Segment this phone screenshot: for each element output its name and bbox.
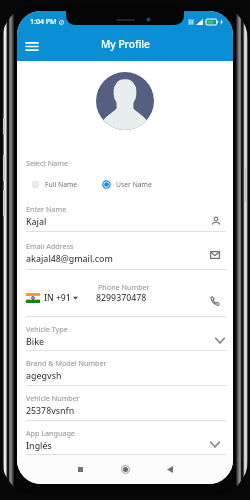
other: Expand bbox=[215, 337, 225, 344]
staticText: akajal48@gmail.com bbox=[26, 253, 113, 265]
staticText: App Language bbox=[26, 428, 75, 438]
staticText: agegvsh bbox=[26, 370, 62, 382]
button[interactable]: Home bbox=[118, 462, 133, 477]
staticText: Kajal bbox=[26, 216, 47, 228]
staticText: Vehicle Number bbox=[26, 393, 80, 403]
staticText: IN +91 bbox=[44, 292, 71, 304]
staticText: Enter Name bbox=[26, 204, 67, 214]
staticText: Inglés bbox=[26, 440, 52, 452]
button[interactable]: Enter Name bbox=[26, 200, 226, 232]
button[interactable]: Brand & Model Number bbox=[26, 351, 226, 386]
button[interactable]: Open navigation menu bbox=[23, 37, 41, 55]
button[interactable]: Recent apps bbox=[73, 462, 88, 477]
button[interactable]: App Language bbox=[26, 421, 226, 455]
staticText: Phone Number bbox=[98, 282, 150, 292]
staticText: Select Name bbox=[26, 158, 69, 168]
staticText: Full Name bbox=[45, 180, 78, 189]
button[interactable]: User Name bbox=[102, 180, 152, 189]
staticText: 25378vsnfn bbox=[26, 405, 75, 417]
staticText: User Name bbox=[116, 180, 152, 189]
other: Expand bbox=[210, 441, 220, 448]
staticText: 1:04 PM bbox=[30, 17, 57, 27]
button[interactable]: Back bbox=[162, 462, 177, 477]
button[interactable]: Full Name bbox=[31, 180, 78, 189]
staticText: 8299370478 bbox=[96, 292, 147, 304]
other: Name bbox=[211, 216, 221, 226]
other: Call bbox=[210, 296, 220, 306]
button[interactable]: Phone Number bbox=[26, 270, 226, 317]
button[interactable]: Vehicle Number bbox=[26, 386, 226, 421]
staticText: Bike bbox=[26, 336, 45, 348]
staticText: Brand & Model Number bbox=[26, 358, 107, 368]
button[interactable]: Vehicle Type bbox=[26, 317, 226, 351]
staticText: Email Address bbox=[26, 241, 74, 251]
other: Email bbox=[210, 251, 220, 259]
button[interactable]: Email Address bbox=[26, 232, 226, 270]
staticText: Vehicle Type bbox=[26, 324, 68, 334]
staticText: My Profile bbox=[101, 37, 150, 51]
